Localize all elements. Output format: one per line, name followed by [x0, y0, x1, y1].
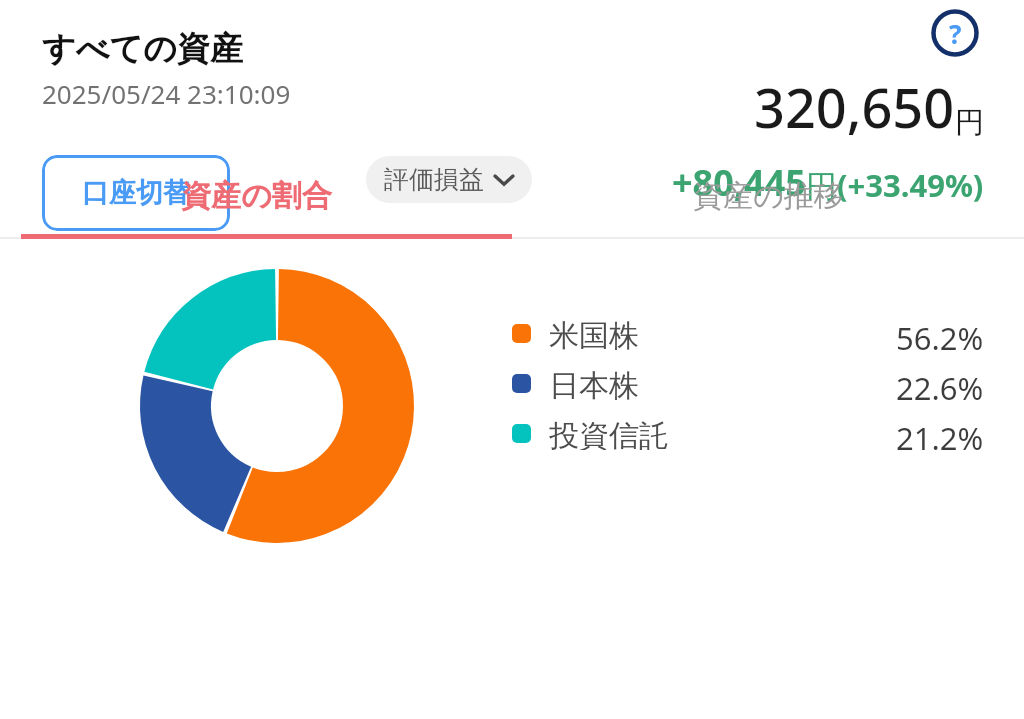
button[interactable]: Help [928, 6, 982, 60]
button[interactable]: 資産の推移 [512, 153, 1024, 239]
staticText: 320,650 [754, 70, 955, 144]
button[interactable]: 米国株 [512, 317, 984, 350]
staticText: 評価損益 [384, 164, 484, 195]
staticText: (+33.49%) [837, 164, 984, 206]
button[interactable]: 日本株 [512, 367, 984, 400]
staticText: 2025/05/24 23:10:09 [42, 76, 291, 111]
button[interactable]: 評価損益 [366, 156, 532, 203]
staticText: 資産の推移 [693, 177, 844, 215]
staticText: 米国株 [549, 317, 639, 350]
staticText: +80,445 [672, 158, 806, 207]
button[interactable]: 投資信託 [512, 417, 984, 450]
staticText: 口座切替 [82, 176, 190, 210]
staticText: 56.2% [896, 317, 984, 350]
staticText: 日本株 [549, 367, 639, 400]
button[interactable]: 口座切替 [42, 155, 230, 231]
staticText: 円 [955, 104, 984, 141]
staticText: すべての資産 [42, 28, 244, 70]
staticText: 21.2% [896, 417, 984, 450]
staticText: 円 [806, 167, 837, 206]
staticText: 投資信託 [549, 417, 669, 450]
staticText: ? [949, 16, 962, 51]
staticText: 資産の割合 [181, 177, 332, 215]
staticText: 22.6% [896, 367, 984, 400]
button[interactable]: 資産の割合 [0, 153, 512, 239]
